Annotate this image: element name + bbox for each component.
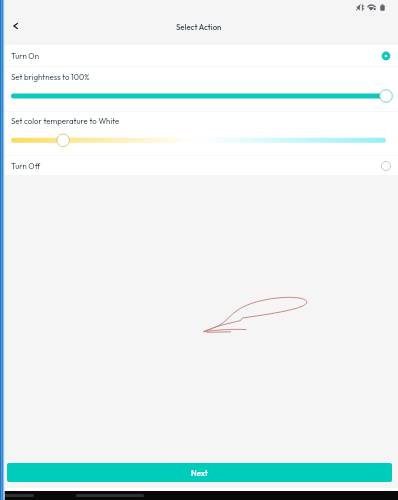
- button[interactable]: Turn On: [0, 45, 398, 66]
- button[interactable]: [0, 66, 398, 111]
- staticText: Select Action: [176, 22, 222, 32]
- button[interactable]: [0, 111, 398, 155]
- staticText: Turn Off: [11, 161, 41, 171]
- staticText: Next: [191, 468, 208, 478]
- staticText: Set color temperature to White: [11, 116, 120, 126]
- button[interactable]: Turn Off: [0, 157, 398, 175]
- staticText: Turn On: [11, 51, 39, 61]
- button[interactable]: Next: [7, 463, 392, 482]
- button[interactable]: Back: [3, 13, 28, 38]
- staticText: Set brightness to 100%: [11, 72, 90, 82]
